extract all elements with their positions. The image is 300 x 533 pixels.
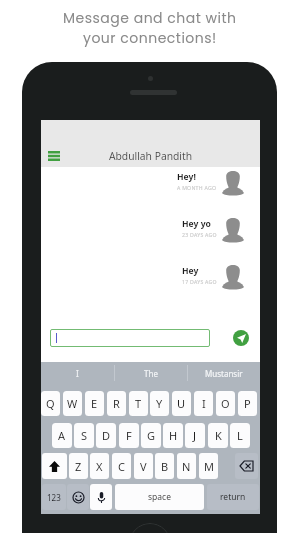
staticText: M (204, 459, 214, 474)
button[interactable]: Q (41, 391, 60, 416)
staticText: The (144, 368, 158, 379)
button[interactable]: Mustansir (187, 362, 260, 384)
staticText: L (237, 428, 243, 443)
staticText: O (221, 396, 230, 411)
button[interactable]: 123 (42, 484, 66, 510)
button[interactable]: M (199, 453, 218, 479)
staticText: T (135, 396, 142, 411)
button[interactable]: U (172, 391, 191, 416)
staticText: B (161, 459, 169, 474)
button[interactable]: Hey! (41, 166, 260, 200)
staticText: return (220, 491, 246, 503)
button[interactable]: I (194, 391, 213, 416)
button[interactable]: Menu (43, 145, 65, 167)
staticText: A (58, 428, 66, 443)
staticText: space (148, 491, 171, 503)
staticText: Mustansir (205, 368, 243, 379)
staticText: E (91, 396, 98, 411)
button[interactable]: Hey (41, 260, 260, 294)
staticText: Q (46, 396, 55, 411)
staticText: I (202, 396, 206, 411)
staticText: Z (75, 459, 82, 474)
staticText: X (96, 459, 103, 474)
staticText: H (169, 428, 178, 443)
button[interactable]: H (163, 423, 183, 448)
staticText: 23 DAYS AGO (182, 231, 217, 238)
staticText: S (81, 428, 88, 443)
staticText: A MONTH AGO (177, 184, 217, 191)
staticText: V (140, 459, 147, 474)
staticText: W (67, 396, 78, 411)
button[interactable]: R (107, 391, 126, 416)
button[interactable]: V (134, 453, 153, 479)
button[interactable]: O (216, 391, 235, 416)
staticText: Hey (182, 265, 199, 277)
button[interactable]: space (115, 484, 204, 510)
button[interactable]: Shift (42, 453, 67, 479)
button[interactable]: The (114, 362, 187, 384)
button[interactable]: Z (69, 453, 88, 479)
button[interactable]: A (52, 423, 72, 448)
staticText: Y (156, 396, 163, 411)
button[interactable]: N (177, 453, 196, 479)
staticText: Abdullah Pandith (41, 149, 260, 163)
staticText: F (126, 428, 132, 443)
staticText: 123 (47, 492, 61, 503)
button[interactable]: B (155, 453, 174, 479)
button[interactable]: S (74, 423, 94, 448)
button[interactable]: L (230, 423, 250, 448)
button[interactable] (50, 329, 210, 347)
button[interactable]: Emoji (67, 484, 89, 510)
button[interactable]: Y (150, 391, 169, 416)
button[interactable]: J (185, 423, 205, 448)
button[interactable]: I (41, 362, 114, 384)
staticText: U (177, 396, 186, 411)
button[interactable]: P (238, 391, 257, 416)
button[interactable]: Hey yo (41, 213, 260, 247)
staticText: K (215, 428, 222, 443)
button[interactable]: return (207, 484, 259, 510)
button[interactable]: W (63, 391, 82, 416)
button[interactable]: Send (233, 330, 249, 346)
button[interactable]: Backspace (235, 453, 258, 479)
staticText: R (113, 396, 120, 411)
staticText: J (193, 428, 197, 443)
button[interactable]: K (208, 423, 228, 448)
button[interactable]: C (112, 453, 131, 479)
button[interactable]: F (119, 423, 139, 448)
staticText: I (76, 368, 79, 379)
button[interactable]: X (90, 453, 109, 479)
button[interactable]: G (141, 423, 161, 448)
staticText: Hey! (177, 171, 196, 183)
staticText: 17 DAYS AGO (182, 278, 217, 285)
button[interactable]: D (96, 423, 116, 448)
staticText: P (244, 396, 251, 411)
staticText: G (147, 428, 156, 443)
button[interactable]: T (129, 391, 148, 416)
staticText: N (182, 459, 191, 474)
staticText: C (118, 459, 125, 474)
staticText: Hey yo (182, 218, 211, 230)
staticText: your connections! (83, 28, 217, 48)
staticText: D (102, 428, 111, 443)
button[interactable]: E (85, 391, 104, 416)
button[interactable]: Dictation (90, 484, 112, 510)
staticText: Message and chat with (63, 8, 237, 28)
